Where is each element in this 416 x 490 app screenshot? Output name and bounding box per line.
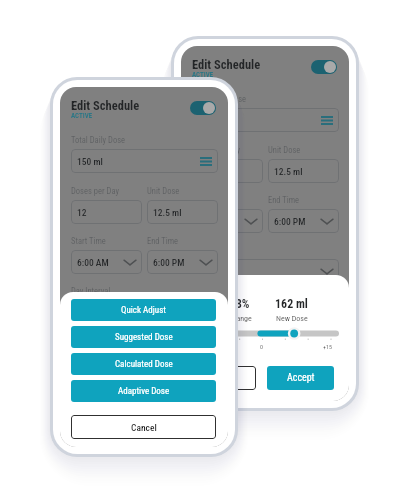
button[interactable]: Adaptive Dose — [71, 380, 216, 402]
staticText: 6:00 AM — [77, 257, 109, 268]
other: Menu — [200, 157, 212, 166]
staticText: Start Time — [192, 195, 227, 205]
staticText: Suggested Dose — [115, 332, 173, 343]
staticText: Edit Schedule — [71, 98, 140, 113]
staticText: 0 — [260, 343, 263, 350]
staticText: Accept — [287, 372, 315, 384]
button[interactable]: 12 — [192, 159, 263, 183]
other: Menu — [321, 116, 333, 125]
button[interactable]: 150 ml — [192, 108, 339, 132]
staticText: Start Time — [71, 236, 106, 246]
staticText: Every day — [198, 266, 234, 277]
button[interactable]: 6:00 AM — [192, 209, 263, 233]
button[interactable]: Every day — [71, 300, 218, 324]
button[interactable]: 12.5 ml — [147, 200, 218, 224]
button[interactable]: Every day — [192, 259, 339, 283]
button[interactable]: Cancel — [192, 366, 256, 390]
staticText: End Time — [268, 195, 300, 205]
button[interactable]: Accept — [267, 366, 334, 390]
staticText: Doses per Day — [71, 186, 119, 196]
staticText: Total Daily Dose — [192, 94, 247, 104]
staticText: Change — [228, 314, 252, 323]
button[interactable]: Quick Adjust — [71, 299, 216, 321]
button[interactable]: 6:00 PM — [268, 209, 339, 233]
staticText: Cancel — [131, 422, 157, 433]
button[interactable]: Active toggle — [311, 60, 337, 74]
staticText: Unit Dose — [147, 186, 180, 196]
button[interactable]: 12.5 ml — [268, 159, 339, 183]
staticText: Unit Dose — [268, 145, 301, 155]
staticText: Doses per Day — [192, 145, 240, 155]
staticText: ACTIVE — [192, 71, 214, 79]
button[interactable]: Active toggle — [190, 101, 216, 115]
staticText: ACTIVE — [71, 112, 93, 120]
button[interactable]: Calculated Dose — [71, 353, 216, 375]
staticText: Cancel — [211, 372, 238, 384]
staticText: New Dose — [276, 314, 308, 323]
staticText: Quick Adjust — [121, 305, 166, 316]
staticText: 162 ml — [275, 297, 308, 311]
button[interactable]: 6:00 PM — [147, 250, 218, 274]
button[interactable]: Cancel — [71, 415, 216, 439]
staticText: 6:00 AM — [198, 216, 230, 227]
staticText: 6:00 PM — [274, 216, 306, 227]
staticText: Day Interval — [71, 286, 111, 296]
button[interactable]: 12 — [71, 200, 142, 224]
staticText: 12.5 ml — [153, 207, 182, 218]
staticText: Day Interval — [192, 245, 232, 255]
button[interactable]: 150 ml — [71, 149, 218, 173]
staticText: 150 ml — [77, 156, 103, 167]
button[interactable]: Suggested Dose — [71, 326, 216, 348]
staticText: End Time — [147, 236, 179, 246]
staticText: 12 — [198, 166, 208, 177]
staticText: Total Daily Dose — [71, 135, 126, 145]
staticText: 12.5 ml — [274, 166, 303, 177]
staticText: -15 — [192, 343, 200, 350]
staticText: +15 — [323, 343, 332, 350]
staticText: Calculated Dose — [115, 359, 173, 370]
staticText: Edit Schedule — [192, 57, 261, 72]
staticText: Adaptive Dose — [118, 386, 170, 397]
staticText: 6:00 PM — [153, 257, 185, 268]
staticText: 12 — [77, 207, 87, 218]
button[interactable]: 6:00 AM — [71, 250, 142, 274]
staticText: +8% — [230, 297, 250, 311]
